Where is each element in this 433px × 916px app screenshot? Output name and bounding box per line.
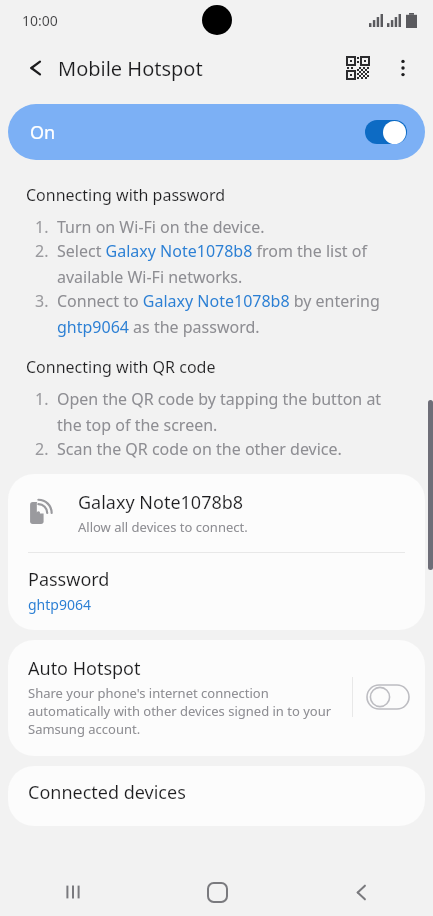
button[interactable]: Password bbox=[8, 553, 425, 630]
staticText: 1. bbox=[35, 388, 57, 410]
staticText: Open the QR code by tapping the button a… bbox=[57, 388, 407, 436]
button[interactable]: Back bbox=[289, 868, 433, 916]
button[interactable]: QR code bbox=[335, 45, 381, 91]
staticText: Allow all devices to connect. bbox=[78, 518, 248, 536]
staticText: 3. bbox=[35, 290, 57, 312]
button[interactable]: More options bbox=[381, 46, 425, 90]
button[interactable]: Auto Hotspot toggle bbox=[367, 685, 409, 709]
staticText: 1. bbox=[35, 216, 57, 238]
staticText: 10:00 bbox=[22, 11, 58, 30]
staticText: Turn on Wi-Fi on the device. bbox=[57, 216, 265, 238]
staticText: Select Galaxy Note1078b8 from the list o… bbox=[57, 240, 407, 288]
staticText: Connected devices bbox=[28, 780, 186, 805]
staticText: Connecting with password bbox=[26, 184, 226, 206]
button[interactable]: Home bbox=[145, 868, 289, 916]
staticText: ghtp9064 bbox=[28, 595, 91, 614]
button[interactable]: Recent apps bbox=[0, 868, 145, 916]
button[interactable]: Auto Hotspot bbox=[8, 640, 425, 756]
staticText: Password bbox=[28, 567, 110, 592]
staticText: Auto Hotspot bbox=[28, 656, 141, 681]
button[interactable]: Back bbox=[14, 46, 58, 90]
staticText: Galaxy Note1078b8 bbox=[78, 490, 244, 515]
staticText: Connecting with QR code bbox=[26, 356, 216, 378]
button[interactable]: On bbox=[8, 104, 425, 160]
staticText: 2. bbox=[35, 438, 57, 460]
button[interactable]: Galaxy Note1078b8 bbox=[8, 474, 425, 552]
staticText: Connect to Galaxy Note1078b8 by entering… bbox=[57, 290, 407, 338]
staticText: Mobile Hotspot bbox=[58, 55, 203, 82]
button[interactable]: Connected devices bbox=[8, 766, 425, 826]
staticText: Share your phone's internet connection a… bbox=[28, 684, 342, 738]
staticText: 2. bbox=[35, 240, 57, 262]
staticText: On bbox=[30, 120, 56, 145]
staticText: Scan the QR code on the other device. bbox=[57, 438, 342, 460]
